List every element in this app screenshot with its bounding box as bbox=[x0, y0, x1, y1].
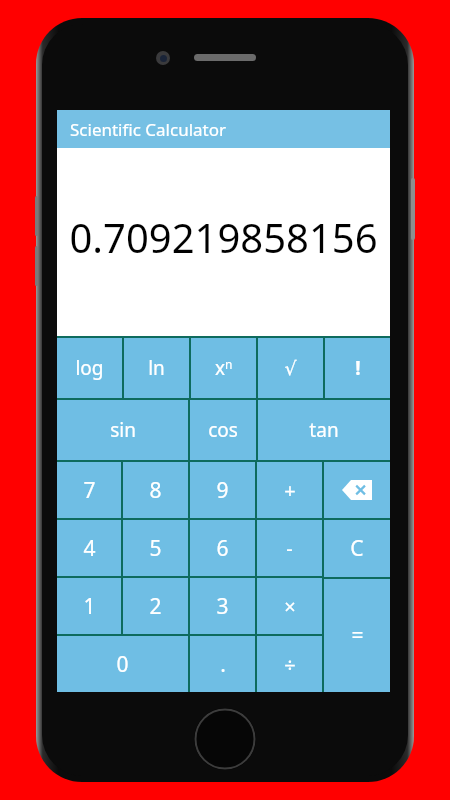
button[interactable]: tan bbox=[258, 400, 390, 460]
button[interactable]: 6 bbox=[190, 520, 255, 576]
button[interactable]: Divide bbox=[257, 636, 322, 692]
button[interactable]: Home bbox=[194, 708, 256, 770]
staticText: ! bbox=[355, 355, 361, 381]
staticText: 5 bbox=[149, 534, 162, 563]
button[interactable]: x to the power n bbox=[191, 338, 256, 398]
button[interactable]: Scientific Calculator bbox=[57, 110, 390, 148]
button[interactable]: Clear bbox=[324, 520, 390, 577]
staticText: 8 bbox=[149, 476, 162, 505]
button[interactable]: Multiply bbox=[257, 578, 322, 634]
staticText: 1 bbox=[83, 592, 96, 621]
button[interactable]: 0 bbox=[57, 636, 188, 692]
staticText: 4 bbox=[83, 534, 96, 563]
staticText: tan bbox=[309, 417, 339, 443]
button[interactable]: ln bbox=[124, 338, 189, 398]
staticText: 3 bbox=[216, 592, 229, 621]
staticText: 0.709219858156 bbox=[69, 210, 378, 264]
button[interactable]: Factorial bbox=[325, 338, 390, 398]
button[interactable]: Plus bbox=[257, 462, 322, 518]
staticText: 9 bbox=[216, 476, 229, 505]
staticText: = bbox=[351, 621, 364, 650]
button[interactable]: log bbox=[57, 338, 122, 398]
button[interactable]: 1 bbox=[57, 578, 121, 634]
button[interactable]: 7 bbox=[57, 462, 121, 518]
staticText: sin bbox=[110, 417, 136, 443]
button[interactable]: 9 bbox=[190, 462, 255, 518]
staticText: 6 bbox=[216, 534, 229, 563]
button[interactable]: Minus bbox=[257, 520, 322, 576]
staticText: √ bbox=[284, 357, 297, 379]
staticText: xn bbox=[215, 355, 233, 381]
button[interactable]: cos bbox=[190, 400, 256, 460]
staticText: ÷ bbox=[284, 651, 296, 678]
staticText: . bbox=[220, 650, 226, 679]
button[interactable]: Equals bbox=[324, 579, 390, 692]
button[interactable]: Decimal point bbox=[190, 636, 255, 692]
staticText: log bbox=[75, 355, 104, 381]
staticText: 0 bbox=[116, 650, 129, 679]
staticText: × bbox=[284, 593, 296, 620]
staticText: C bbox=[350, 534, 364, 563]
staticText: cos bbox=[208, 417, 238, 443]
staticText: 2 bbox=[149, 592, 162, 621]
staticText: - bbox=[286, 535, 293, 562]
staticText: + bbox=[284, 477, 296, 504]
staticText: 7 bbox=[83, 476, 96, 505]
button[interactable]: Square root bbox=[258, 338, 323, 398]
button[interactable]: 2 bbox=[123, 578, 188, 634]
staticText: Scientific Calculator bbox=[70, 118, 227, 141]
button[interactable]: 5 bbox=[123, 520, 188, 576]
button[interactable]: 8 bbox=[123, 462, 188, 518]
staticText: ln bbox=[148, 355, 165, 381]
button[interactable]: 3 bbox=[190, 578, 255, 634]
button[interactable]: Backspace bbox=[324, 462, 390, 518]
button[interactable]: sin bbox=[57, 400, 188, 460]
button[interactable]: 4 bbox=[57, 520, 121, 576]
